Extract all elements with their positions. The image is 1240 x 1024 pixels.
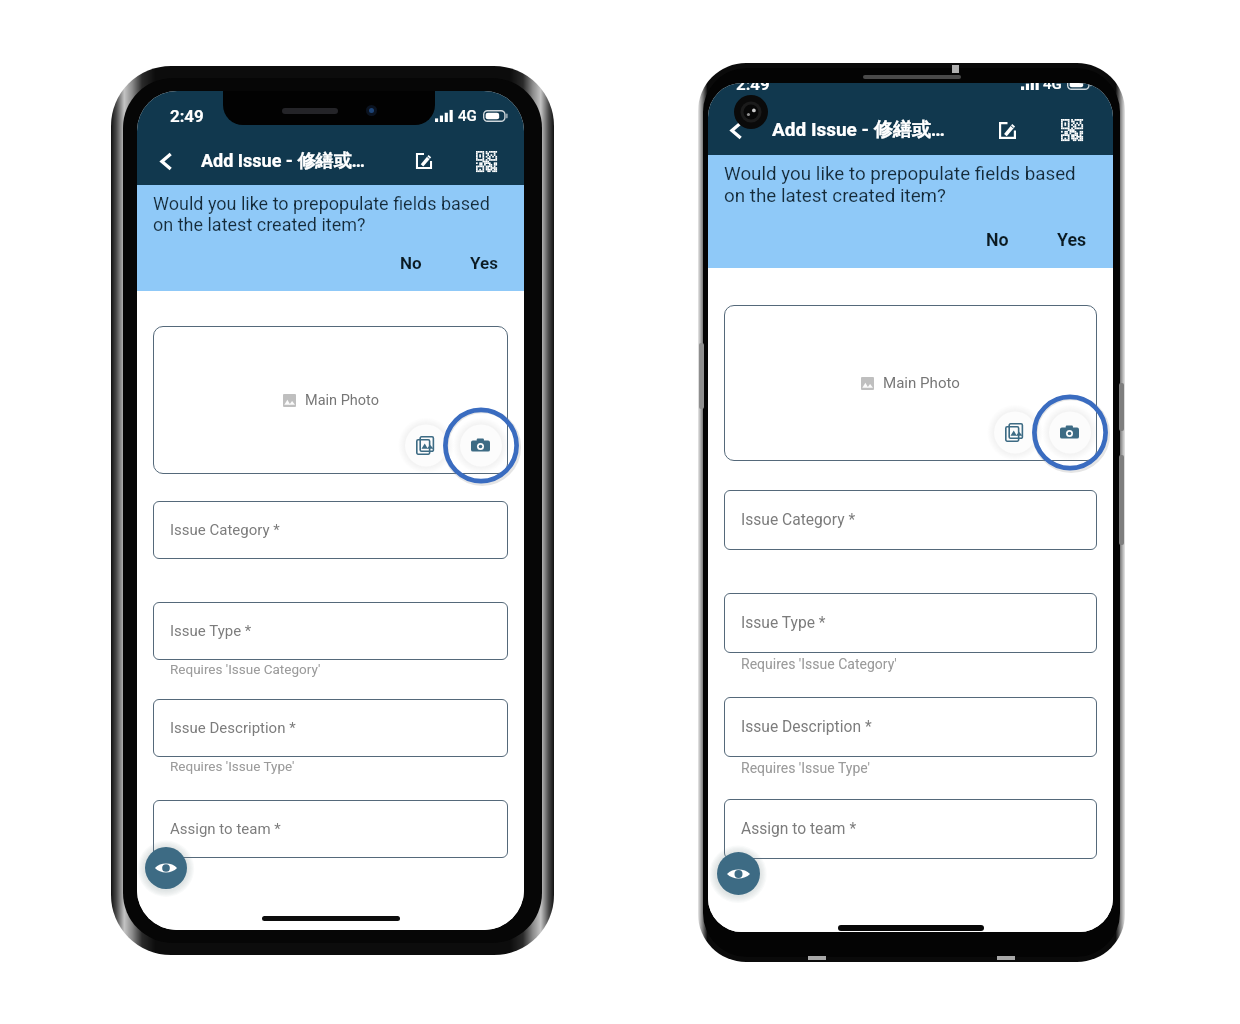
staticText: Issue Category * [741, 511, 856, 529]
button[interactable]: Assign to team * [153, 800, 508, 858]
button[interactable]: No [389, 248, 433, 278]
staticText: Requires 'Issue Type' [170, 758, 295, 774]
staticText: 2:49 [170, 106, 204, 126]
button[interactable]: Yes [459, 248, 509, 278]
staticText: Assign to team * [170, 820, 281, 838]
staticText: Main Photo [883, 374, 960, 392]
button[interactable]: No [975, 224, 1020, 255]
staticText: 2:49 [736, 83, 770, 94]
staticText: Yes [470, 253, 498, 273]
button[interactable]: Issue Type * [724, 593, 1097, 653]
button[interactable]: Edit [406, 143, 442, 179]
button[interactable]: Scan QR code [468, 143, 504, 179]
button[interactable]: Take photo [463, 428, 498, 463]
button[interactable]: Yes [1046, 224, 1098, 255]
button[interactable]: Edit [989, 112, 1025, 148]
staticText: Main Photo [305, 392, 379, 409]
button[interactable]: Choose from gallery [408, 428, 443, 463]
staticText: Issue Description * [741, 718, 872, 736]
staticText: Requires 'Issue Category' [170, 661, 321, 677]
button[interactable]: Back [718, 112, 754, 148]
button[interactable]: Preview [717, 852, 760, 895]
button[interactable]: Main Photo [153, 326, 508, 474]
button[interactable]: Choose from gallery [997, 415, 1032, 450]
staticText: Yes [1057, 229, 1087, 250]
staticText: Would you like to prepopulate fields bas… [724, 163, 1076, 206]
staticText: No [986, 229, 1009, 250]
staticText: Issue Type * [170, 622, 252, 640]
button[interactable]: Assign to team * [724, 799, 1097, 859]
button[interactable]: Preview [145, 847, 187, 889]
button[interactable]: Issue Type * [153, 602, 508, 660]
button[interactable]: Take photo [1052, 415, 1087, 450]
button[interactable]: Back [148, 143, 184, 179]
button[interactable]: Issue Category * [724, 490, 1097, 550]
button[interactable]: Scan QR code [1054, 112, 1090, 148]
staticText: Assign to team * [741, 820, 857, 838]
button[interactable]: Main Photo [724, 305, 1097, 461]
staticText: 4G [1043, 83, 1062, 93]
button[interactable]: Issue Category * [153, 501, 508, 559]
button[interactable]: Issue Description * [153, 699, 508, 757]
staticText: Requires 'Issue Category' [741, 656, 897, 672]
staticText: 4G [458, 107, 477, 125]
staticText: Issue Category * [170, 521, 280, 539]
staticText: Add Issue - 修繕或… [201, 150, 365, 173]
staticText: Requires 'Issue Type' [741, 760, 871, 776]
staticText: Issue Type * [741, 614, 826, 632]
staticText: No [400, 253, 422, 273]
staticText: Would you like to prepopulate fields bas… [153, 193, 490, 235]
button[interactable]: Issue Description * [724, 697, 1097, 757]
staticText: Add Issue - 修繕或… [772, 118, 945, 142]
staticText: Issue Description * [170, 719, 296, 737]
